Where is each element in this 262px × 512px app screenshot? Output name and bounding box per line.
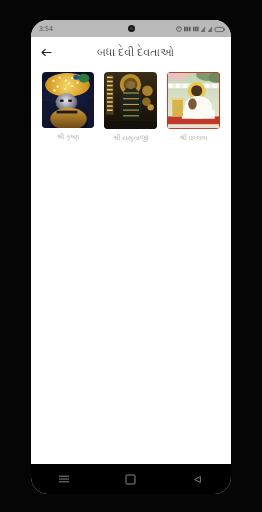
button[interactable]: શ્રી યમુનાજી	[102, 71, 159, 144]
staticText: શ્રી વલ્લભ	[167, 133, 220, 143]
button[interactable]: Home	[97, 464, 164, 494]
staticText: બધા દેવી દેવતાઓ	[97, 44, 174, 59]
button[interactable]: Recent apps	[31, 464, 97, 494]
staticText: શ્રી કૃષ્ણ	[42, 132, 94, 142]
button[interactable]: Back	[164, 464, 231, 494]
button[interactable]: Back	[35, 41, 57, 63]
button[interactable]: શ્રી વલ્લભ	[165, 71, 222, 144]
staticText: 3:54	[39, 24, 53, 34]
button[interactable]: શ્રી કૃષ્ણ	[40, 71, 96, 143]
staticText: શ્રી યમુનાજી	[104, 133, 157, 143]
